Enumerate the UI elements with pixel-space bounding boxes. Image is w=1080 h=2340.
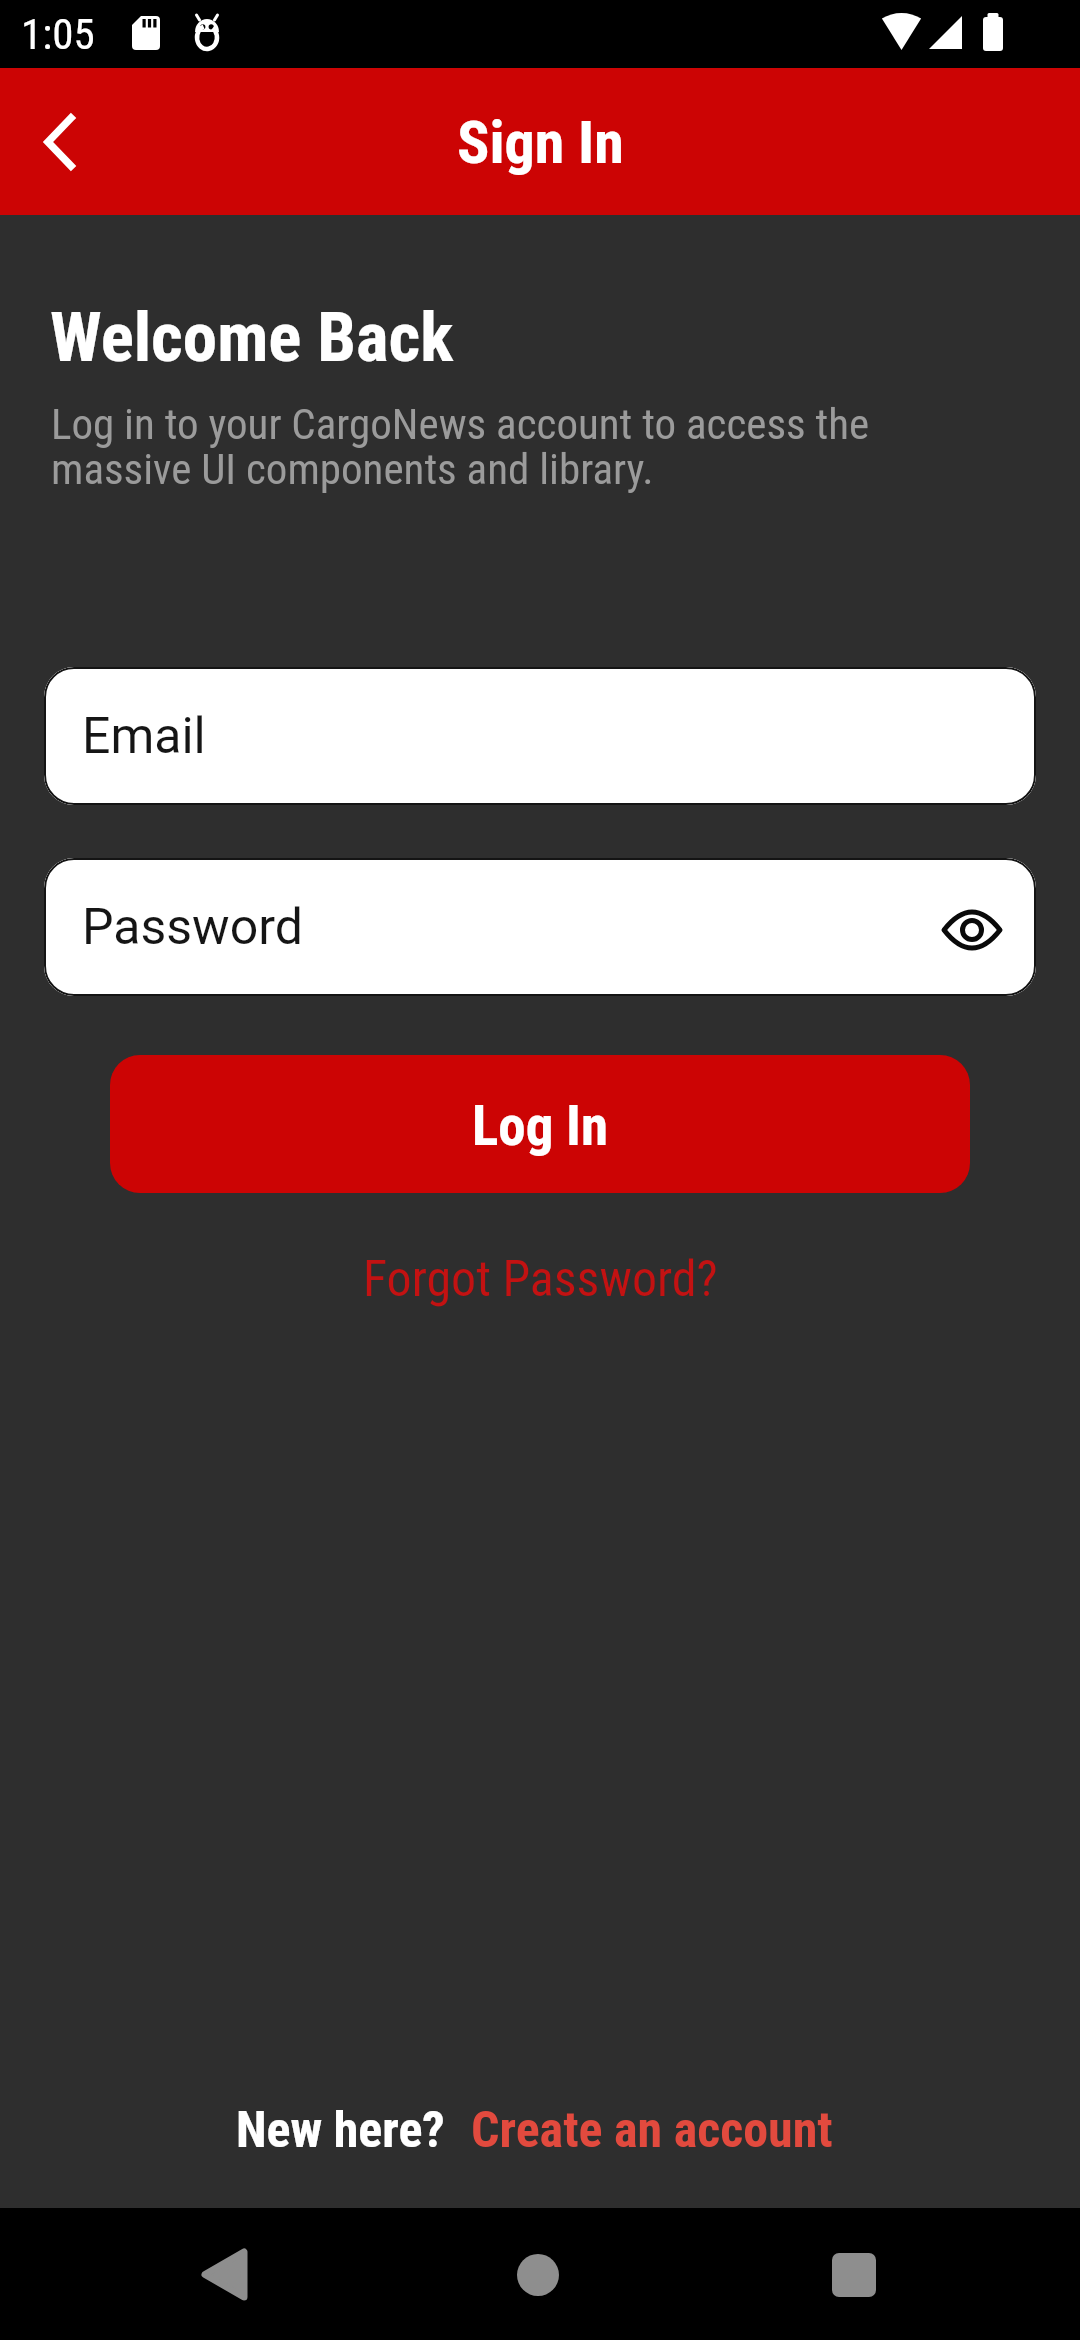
button[interactable] [0,2208,360,2340]
staticText: Password [82,898,303,957]
staticText: Sign In [457,107,624,177]
button[interactable]: Forgot Password? [363,1250,718,1309]
staticText: Log In [472,1094,608,1158]
staticText: Log in to your CargoNews account to acce… [51,399,870,494]
button[interactable] [0,68,110,215]
button[interactable] [360,2208,720,2340]
button[interactable]: Log In [110,1055,970,1193]
button[interactable]: Email [44,667,1036,805]
staticText: Welcome Back [50,297,454,378]
button[interactable] [720,2208,1080,2340]
staticText: 1:05 [21,9,95,59]
button[interactable]: Create an account [471,2101,833,2160]
staticText: New here? [236,2101,445,2160]
staticText: Email [82,707,206,766]
button[interactable]: Password [44,858,1036,996]
